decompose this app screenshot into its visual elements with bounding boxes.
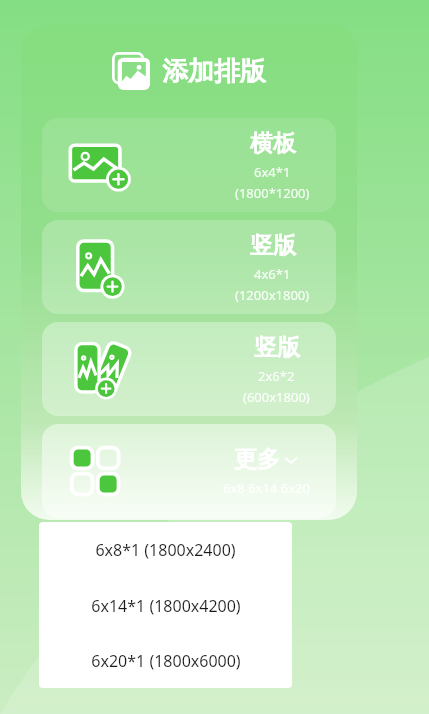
staticText: (1800*1200) [235, 184, 310, 202]
button[interactable]: 6x8*1 (1800x2400) [39, 522, 292, 578]
staticText: 4x6*1 [254, 265, 291, 283]
staticText: 2x6*2 [258, 367, 295, 385]
staticText: 6x4*1 [254, 163, 291, 181]
button[interactable]: 横板 [42, 118, 336, 212]
staticText: 竖版 [250, 231, 296, 260]
staticText: (600x1800) [243, 388, 310, 406]
button[interactable]: 6x20*1 (1800x6000) [39, 633, 292, 688]
button[interactable]: 6x14*1 (1800x4200) [39, 578, 292, 633]
button[interactable]: 添加排版 [21, 24, 357, 118]
staticText: 添加排版 [162, 55, 266, 88]
button[interactable]: 更多 [42, 424, 336, 518]
button[interactable]: 竖版 [42, 220, 336, 314]
button[interactable]: 竖版 [42, 322, 336, 416]
staticText: 更多 [234, 445, 280, 474]
staticText: 6x8 6x14 6x20 [223, 479, 310, 497]
staticText: 横板 [250, 129, 296, 158]
staticText: (1200x1800) [235, 286, 310, 304]
staticText: 6x20*1 (1800x6000) [91, 650, 241, 672]
staticText: 6x14*1 (1800x4200) [91, 595, 241, 617]
staticText: 竖版 [254, 333, 300, 362]
staticText: 6x8*1 (1800x2400) [95, 539, 236, 561]
